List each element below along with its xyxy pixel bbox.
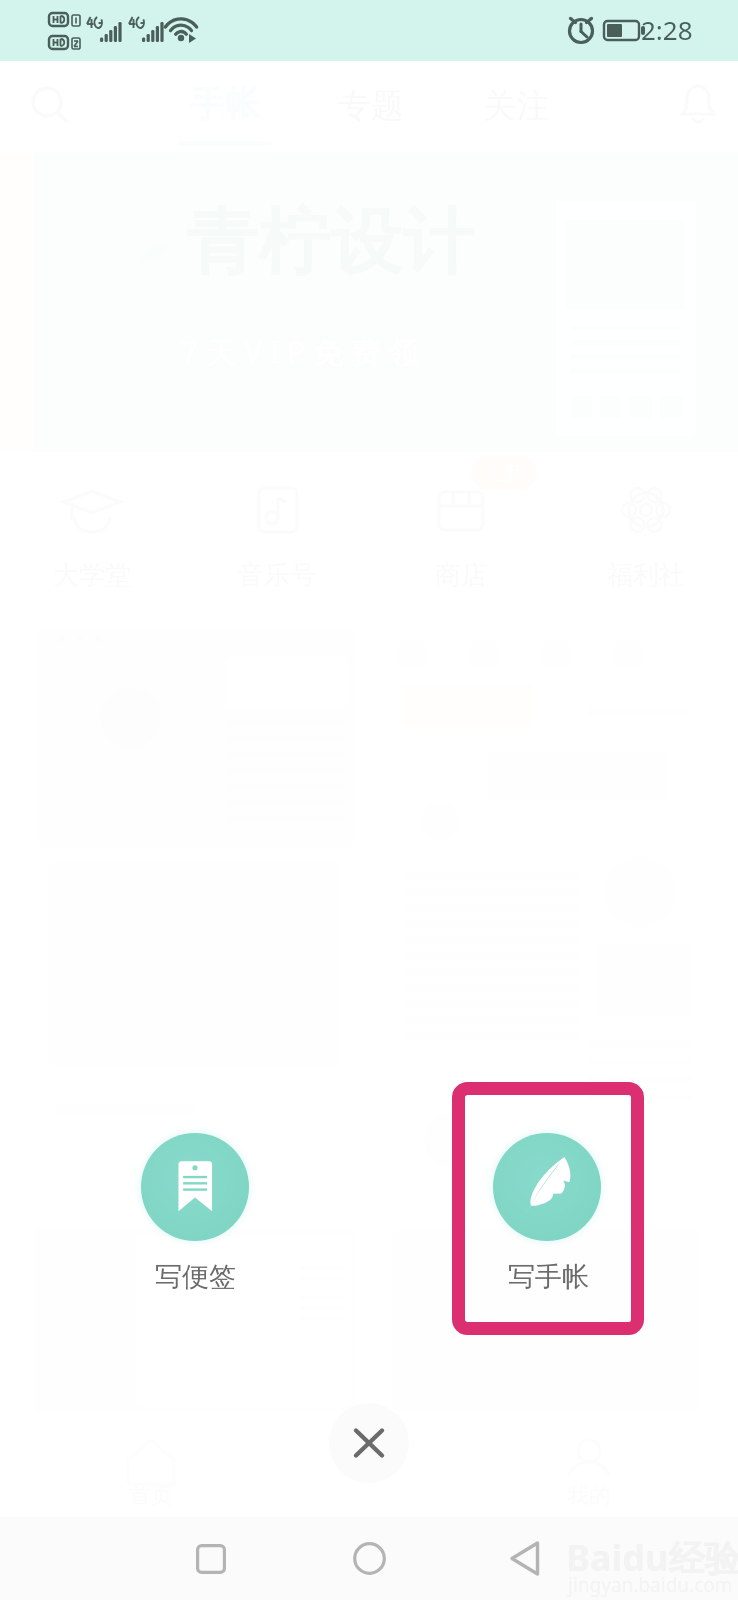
button[interactable]: Recents bbox=[167, 1517, 255, 1600]
button[interactable]: 写手帐 bbox=[452, 1082, 644, 1335]
staticText: 写手帐 bbox=[508, 1260, 589, 1294]
button[interactable]: Close bbox=[329, 1403, 409, 1483]
staticText: 2:28 bbox=[641, 12, 693, 47]
staticText: Baidu经验 bbox=[566, 1533, 738, 1582]
staticText: 写便签 bbox=[155, 1260, 236, 1294]
button[interactable]: 写便签 bbox=[100, 1082, 290, 1335]
button[interactable]: Back bbox=[481, 1517, 569, 1600]
button[interactable]: Home bbox=[325, 1517, 413, 1600]
